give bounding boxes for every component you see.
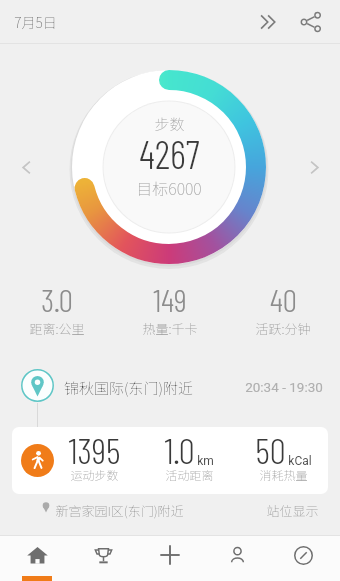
- staticText: 目标6000: [136, 176, 202, 199]
- staticText: 站位显示: [266, 501, 319, 520]
- staticText: 步数: [154, 113, 185, 135]
- staticText: 距离:公里: [29, 319, 85, 338]
- staticText: 新宫家园I区(东门)附近: [55, 501, 184, 520]
- staticText: 7月5日: [14, 12, 57, 32]
- button[interactable]: Add activity: [140, 535, 200, 581]
- staticText: 40: [270, 280, 297, 318]
- button[interactable]: 40: [228, 281, 338, 341]
- staticText: 4267: [139, 130, 200, 177]
- staticText: 149: [153, 280, 187, 318]
- staticText: 活跃:分钟: [255, 319, 311, 338]
- button[interactable]: Previous day: [8, 149, 44, 185]
- button[interactable]: Profile: [207, 535, 267, 581]
- button[interactable]: 3.0: [2, 281, 112, 341]
- button[interactable]: Share: [290, 1, 332, 43]
- button[interactable]: 149: [115, 281, 225, 341]
- staticText: 运动步数: [70, 466, 119, 483]
- button[interactable]: Achievements: [73, 535, 133, 581]
- staticText: 50: [255, 428, 286, 471]
- staticText: 20:34 - 19:30: [245, 379, 323, 395]
- staticText: 3.0: [41, 280, 73, 318]
- staticText: 活动距离: [165, 466, 214, 483]
- button[interactable]: Discover: [273, 535, 333, 581]
- staticText: 锦秋国际(东门)附近: [64, 377, 193, 399]
- staticText: km: [197, 454, 214, 468]
- staticText: 热量:千卡: [142, 319, 198, 338]
- staticText: kCal: [288, 454, 312, 468]
- staticText: 1395: [68, 428, 121, 471]
- staticText: 消耗热量: [259, 466, 308, 483]
- button[interactable]: Next day: [296, 149, 332, 185]
- button[interactable]: 1395: [12, 427, 328, 494]
- staticText: 1.0: [164, 428, 195, 471]
- button[interactable]: Home: [7, 535, 67, 581]
- button[interactable]: Fast forward: [248, 1, 290, 43]
